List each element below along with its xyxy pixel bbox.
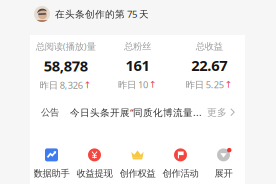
button[interactable]: 公告 bbox=[30, 91, 245, 133]
staticText: 在头条创作的第 75 天 bbox=[55, 7, 149, 21]
staticText: 58,878 bbox=[44, 56, 88, 76]
staticText: ↑ bbox=[149, 79, 157, 90]
staticText: 总收益 bbox=[196, 40, 223, 52]
staticText: 161 bbox=[125, 55, 149, 75]
staticText: 昨日 8,326 bbox=[40, 79, 83, 91]
staticText: 总粉丝 bbox=[124, 40, 151, 52]
button[interactable]: 数据助手 bbox=[30, 148, 73, 179]
staticText: ↑ bbox=[225, 79, 233, 90]
staticText: 22.67 bbox=[191, 55, 227, 75]
button[interactable]: 收益提现 bbox=[73, 148, 116, 179]
staticText: ↑ bbox=[84, 80, 92, 90]
staticText: 数据助手 bbox=[33, 167, 69, 179]
staticText: 公告 bbox=[41, 106, 59, 118]
staticText: 创作活动 bbox=[162, 167, 198, 179]
button[interactable]: 创作权益 bbox=[116, 148, 159, 179]
staticText: 昨日 10 bbox=[118, 78, 148, 91]
staticText: 更多 bbox=[207, 106, 227, 119]
staticText: 今日头条开展“同质化博流量内... bbox=[70, 106, 207, 119]
button[interactable]: 创作活动 bbox=[159, 148, 202, 179]
staticText: 展开 bbox=[214, 167, 232, 179]
button[interactable]: 展开 bbox=[202, 148, 245, 179]
staticText: 昨日 5.25 bbox=[186, 78, 224, 91]
staticText: 收益提现 bbox=[76, 167, 112, 179]
staticText: 总阅读(播放)量 bbox=[36, 40, 96, 53]
staticText: 创作权益 bbox=[119, 167, 155, 179]
